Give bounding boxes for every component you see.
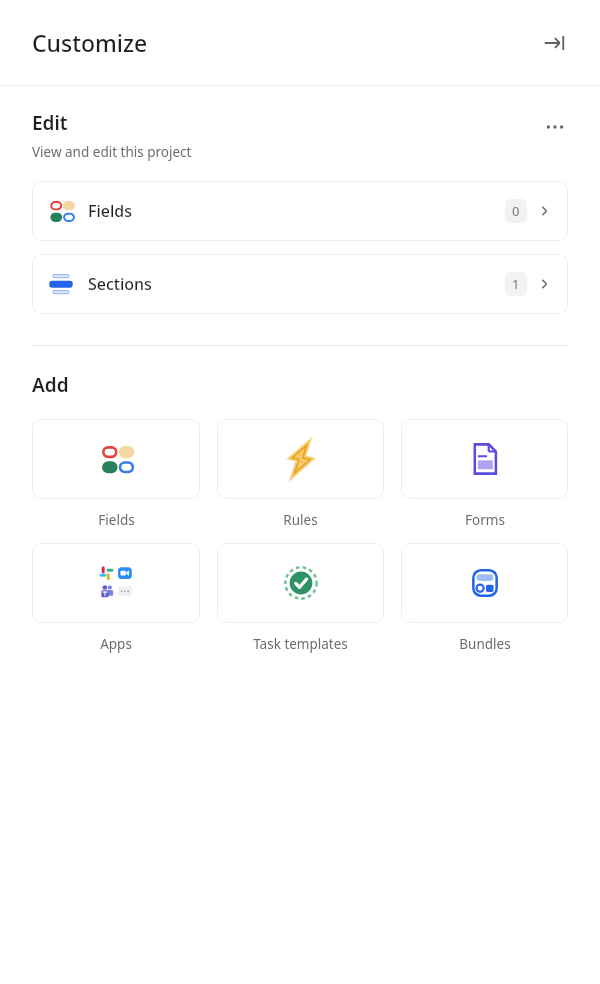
button[interactable]: More options — [538, 110, 572, 144]
staticText: Customize — [32, 27, 536, 58]
staticText: Forms — [465, 511, 505, 529]
staticText: Rules — [283, 511, 318, 529]
staticText: Fields — [98, 511, 135, 529]
staticText: Edit — [32, 110, 68, 136]
button[interactable] — [32, 419, 200, 499]
button[interactable] — [401, 543, 568, 623]
staticText: Bundles — [459, 635, 511, 653]
button[interactable]: Sections — [32, 254, 568, 314]
button[interactable] — [217, 543, 384, 623]
staticText: Sections — [88, 273, 505, 295]
staticText: Fields — [88, 200, 505, 222]
button[interactable]: Collapse panel — [536, 25, 572, 61]
staticText: 1 — [512, 275, 520, 293]
staticText: Apps — [100, 635, 132, 653]
staticText: 0 — [512, 202, 520, 220]
button[interactable]: Fields — [32, 181, 568, 241]
button[interactable] — [217, 419, 384, 499]
staticText: Task templates — [253, 635, 348, 653]
button[interactable] — [32, 543, 200, 623]
staticText: View and edit this project — [32, 143, 192, 161]
staticText: Add — [32, 372, 69, 398]
button[interactable] — [401, 419, 568, 499]
